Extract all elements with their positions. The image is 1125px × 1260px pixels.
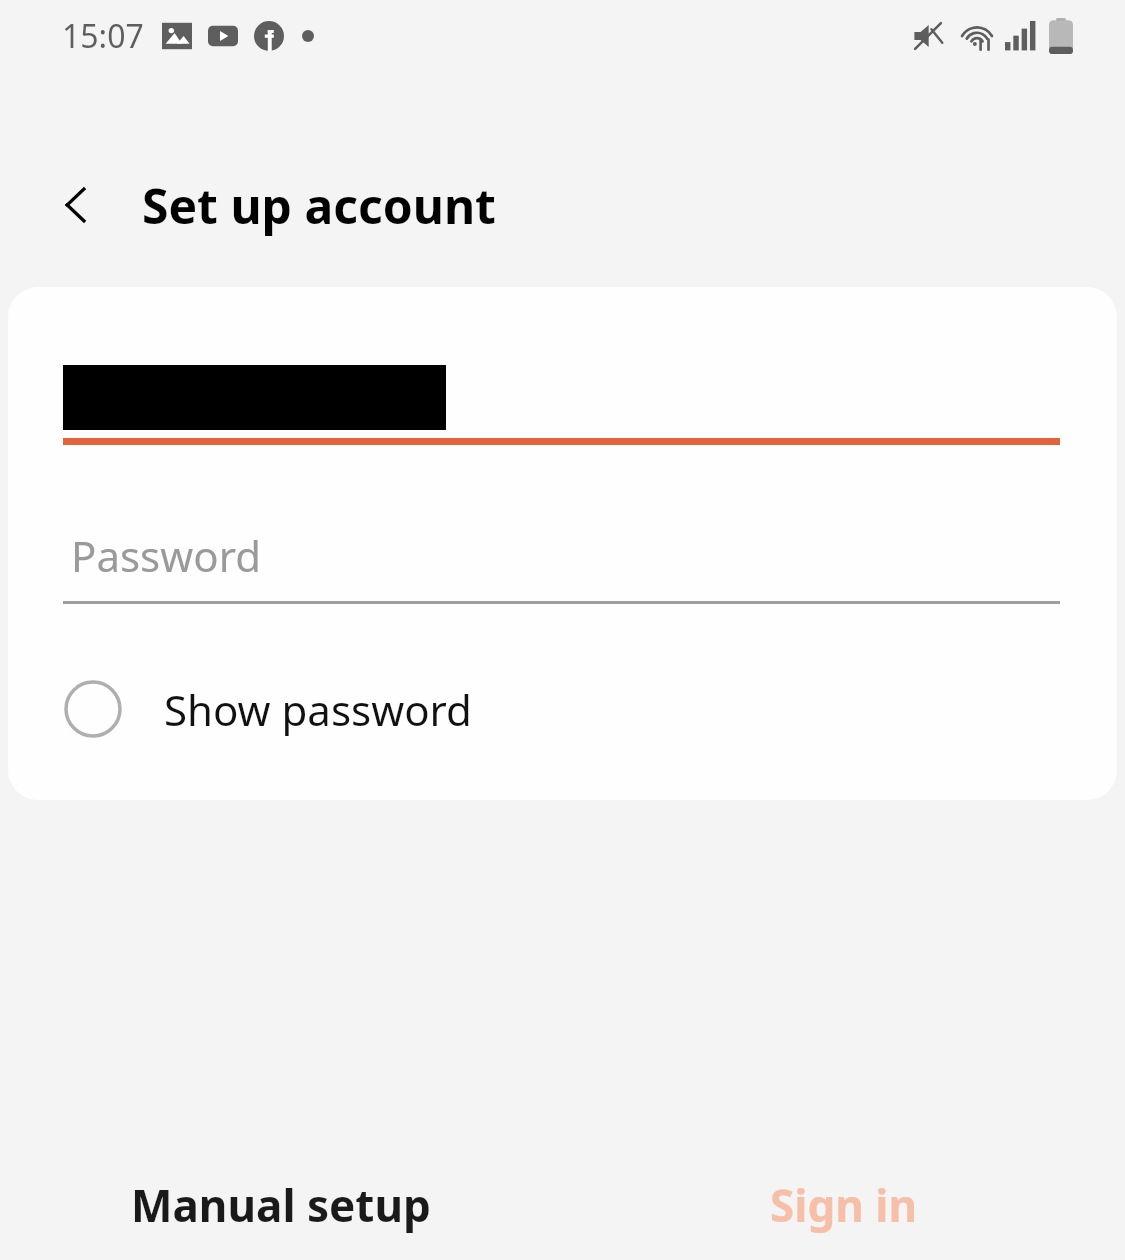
- staticText: Sign in: [770, 1175, 918, 1235]
- staticText: Set up account: [142, 173, 496, 238]
- staticText: Manual setup: [131, 1175, 431, 1235]
- staticText: 15:07: [62, 14, 144, 58]
- button[interactable]: Show password: [8, 663, 1117, 755]
- staticText: Password: [71, 527, 261, 584]
- button[interactable]: Password: [63, 527, 1117, 607]
- button[interactable]: [63, 347, 1117, 457]
- button[interactable]: Manual setup: [0, 1150, 562, 1260]
- staticText: Show password: [164, 681, 472, 738]
- button[interactable]: Back: [40, 169, 112, 241]
- button[interactable]: Sign in: [562, 1150, 1125, 1260]
